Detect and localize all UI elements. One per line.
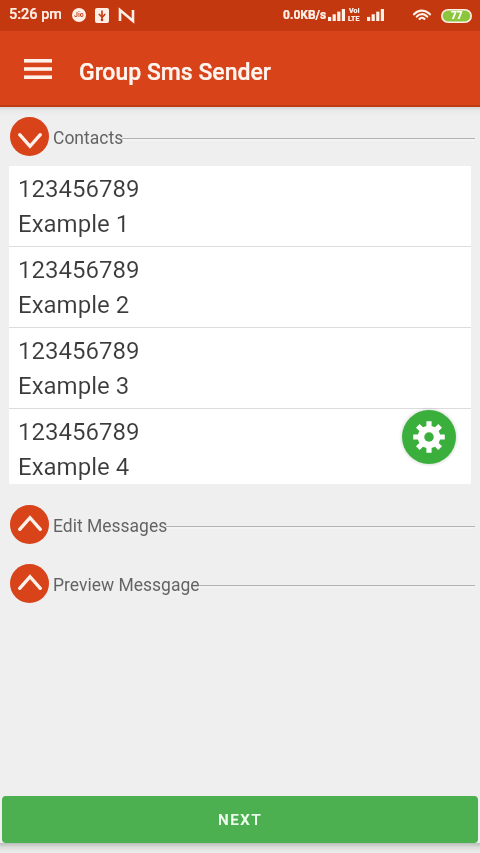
staticText: 123456789 [18,418,140,446]
button[interactable]: Preview Messgage [0,563,480,603]
button[interactable]: 123456789 [9,409,471,484]
staticText: Jio [74,11,84,19]
button[interactable]: Contacts [0,116,480,156]
staticText: Example 2 [18,291,130,319]
button[interactable]: 123456789 [9,166,471,246]
staticText: Contacts [53,128,124,149]
staticText: Example 3 [18,372,130,400]
staticText: 0.0KB/s [283,8,327,22]
button[interactable]: 123456789 [9,328,471,408]
staticText: 77 [451,10,463,22]
button[interactable]: Settings [402,410,456,464]
staticText: LTE [348,15,360,23]
staticText: 123456789 [18,175,140,203]
staticText: VoI [349,7,360,15]
staticText: 123456789 [18,337,140,365]
staticText: Example 1 [18,210,130,238]
staticText: 5:26 pm [9,6,62,23]
button[interactable]: Open navigation drawer [8,45,67,93]
button[interactable]: Edit Messages [0,504,480,544]
button[interactable]: 123456789 [9,247,471,327]
staticText: Edit Messages [53,516,168,537]
button[interactable]: NEXT [2,796,478,843]
staticText: Preview Messgage [53,575,200,596]
staticText: NEXT [218,811,263,829]
staticText: 123456789 [18,256,140,284]
staticText: Example 4 [18,453,130,481]
staticText: Group Sms Sender [79,59,271,86]
